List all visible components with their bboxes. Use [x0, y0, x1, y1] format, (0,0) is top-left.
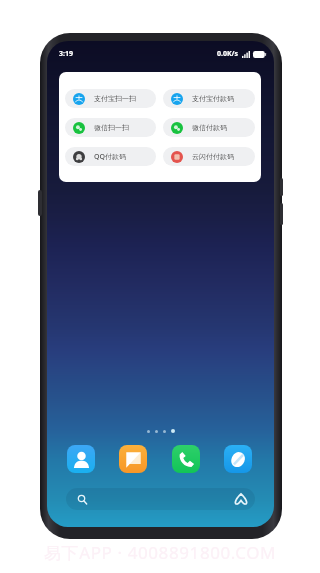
staticText: 微信扫一扫	[94, 123, 129, 132]
button[interactable]: Phone	[172, 445, 200, 473]
button[interactable]: 支付宝扫一扫	[65, 89, 156, 108]
button[interactable]: 云闪付付款码	[163, 147, 255, 166]
button[interactable]: Contacts	[67, 445, 95, 473]
staticText: 3:19	[59, 49, 73, 59]
button[interactable]: 微信付款码	[163, 118, 255, 137]
staticText: 易下APP · 4008891800.COM	[44, 541, 277, 564]
staticText: 支付宝付款码	[192, 94, 234, 103]
staticText: 云闪付付款码	[192, 152, 234, 161]
staticText: 微信付款码	[192, 123, 227, 132]
button[interactable]: Search	[66, 488, 255, 510]
staticText: 支付宝扫一扫	[94, 94, 136, 103]
button[interactable]: 微信扫一扫	[65, 118, 156, 137]
button[interactable]: 支付宝付款码	[163, 89, 255, 108]
staticText: 0.0K/s	[217, 49, 239, 59]
button[interactable]: QQ付款码	[65, 147, 156, 166]
button[interactable]: Messages	[119, 445, 147, 473]
button[interactable]: Browser	[224, 445, 252, 473]
staticText: QQ付款码	[94, 152, 126, 162]
